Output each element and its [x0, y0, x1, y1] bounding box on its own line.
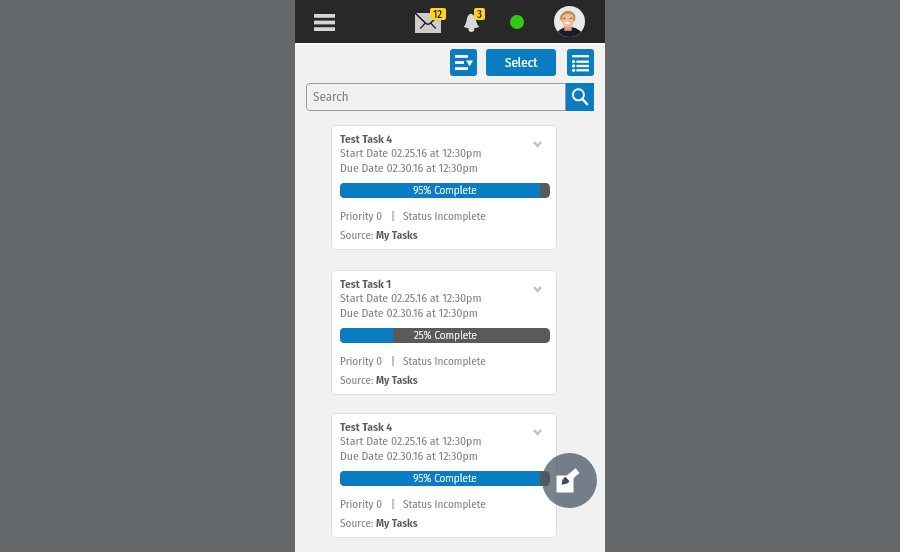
- button[interactable]: Test Task 1: [331, 270, 557, 395]
- staticText: |: [383, 355, 403, 368]
- button[interactable]: Search: [306, 83, 566, 111]
- staticText: Test Task 4: [340, 132, 393, 146]
- staticText: Status Incomplete: [403, 498, 486, 511]
- staticText: My Tasks: [376, 517, 418, 530]
- button[interactable]: Test Task 4: [331, 125, 557, 250]
- button[interactable]: Search: [566, 83, 594, 111]
- button[interactable]: List view: [567, 49, 594, 76]
- button[interactable]: Test Task 4: [331, 413, 557, 538]
- staticText: Priority 0: [340, 210, 383, 223]
- button[interactable]: Sort: [450, 49, 477, 76]
- staticText: Priority 0: [340, 355, 383, 368]
- staticText: Status Incomplete: [403, 355, 486, 368]
- button[interactable]: Create task: [542, 453, 597, 508]
- staticText: 95% Complete: [413, 184, 477, 197]
- staticText: Priority 0: [340, 498, 383, 511]
- button[interactable]: Menu: [309, 7, 339, 37]
- staticText: Status Incomplete: [403, 210, 486, 223]
- staticText: My Tasks: [376, 229, 418, 242]
- staticText: Start Date 02.25.16 at 12:30pm: [340, 146, 482, 160]
- staticText: Start Date 02.25.16 at 12:30pm: [340, 434, 482, 448]
- staticText: Search: [313, 89, 349, 105]
- staticText: 12: [433, 8, 443, 20]
- button[interactable]: Select: [486, 49, 556, 76]
- staticText: 95% Complete: [413, 472, 477, 485]
- staticText: Test Task 1: [340, 277, 392, 291]
- staticText: Due Date 02.30.16 at 12:30pm: [340, 449, 478, 463]
- staticText: 25% Complete: [414, 329, 477, 342]
- button[interactable]: Status online: [510, 15, 524, 29]
- staticText: Source:: [340, 229, 376, 242]
- staticText: Test Task 4: [340, 420, 393, 434]
- staticText: |: [383, 210, 403, 223]
- button[interactable]: Notifications: [463, 5, 489, 35]
- staticText: Due Date 02.30.16 at 12:30pm: [340, 161, 478, 175]
- staticText: Start Date 02.25.16 at 12:30pm: [340, 291, 482, 305]
- staticText: Source:: [340, 517, 376, 530]
- staticText: Source:: [340, 374, 376, 387]
- staticText: Due Date 02.30.16 at 12:30pm: [340, 306, 478, 320]
- button[interactable]: Messages: [415, 5, 447, 35]
- button[interactable]: Profile: [554, 6, 585, 37]
- staticText: My Tasks: [376, 374, 418, 387]
- staticText: 3: [477, 8, 482, 20]
- staticText: Select: [505, 55, 538, 71]
- staticText: |: [383, 498, 403, 511]
